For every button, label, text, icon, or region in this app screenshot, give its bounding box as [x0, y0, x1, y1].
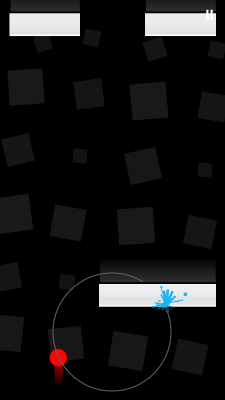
button[interactable]: Pause — [0, 0, 225, 400]
